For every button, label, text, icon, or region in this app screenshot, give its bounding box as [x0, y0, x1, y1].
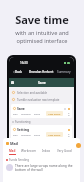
- button[interactable]: Mail: [6, 149, 19, 155]
- staticText: Inbox: [42, 149, 51, 153]
- button[interactable]: Back: [12, 69, 23, 75]
- staticText: Book: [34, 133, 40, 136]
- staticText: 16:30: [20, 61, 28, 65]
- staticText: Save time: [15, 12, 69, 27]
- staticText: Sending: [21, 133, 31, 136]
- staticText: Very Good: [57, 149, 72, 153]
- staticText: Book: [34, 112, 40, 115]
- staticText: New Event: [48, 133, 61, 136]
- button[interactable]: Selection and available: [9, 89, 74, 96]
- staticText: with an intuitive and optimised interfac…: [0, 29, 84, 45]
- button[interactable]: Menu: [11, 81, 14, 84]
- button[interactable]: Workroom: [19, 149, 39, 155]
- button[interactable]: There are large scraps name along the bo…: [6, 164, 77, 172]
- staticText: New Event: [48, 112, 61, 115]
- staticText: There are large scraps name along the bo…: [15, 164, 73, 172]
- staticText: Funds Sending: [9, 158, 30, 162]
- button[interactable]: New Event: [48, 133, 61, 136]
- staticText: Save: [17, 106, 25, 111]
- button[interactable]: Tumble evaluation raw template: [9, 96, 74, 103]
- button[interactable]: Save: [11, 104, 72, 118]
- staticText: Tumble evaluation raw template: [17, 98, 60, 102]
- button[interactable]: Very Good: [54, 149, 74, 155]
- staticText: Save: [68, 111, 70, 116]
- staticText: Setting: [17, 127, 30, 132]
- staticText: Save: [68, 132, 70, 137]
- staticText: Save: [38, 80, 46, 85]
- staticText: Summary: [57, 70, 71, 74]
- staticText: Sending: [21, 112, 31, 115]
- staticText: Bell: [13, 112, 18, 115]
- button[interactable]: Inbox: [39, 149, 54, 155]
- staticText: Mail: [10, 141, 19, 146]
- staticText: Mail: [9, 149, 16, 153]
- staticText: Brandon Herbert: [29, 70, 54, 74]
- staticText: Back: [15, 70, 22, 74]
- staticText: Workroom: [21, 149, 37, 153]
- staticText: Bell: [13, 133, 18, 136]
- staticText: Functioning: [15, 120, 31, 124]
- button[interactable]: Setting: [11, 125, 72, 139]
- button[interactable]: Compose: [76, 143, 81, 148]
- staticText: Selection and available: [17, 91, 47, 95]
- button[interactable]: New Event: [48, 112, 61, 115]
